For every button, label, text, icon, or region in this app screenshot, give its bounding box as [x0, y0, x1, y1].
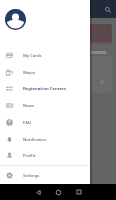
button[interactable]: My Cards [0, 47, 90, 64]
staticText: Notification [23, 137, 47, 143]
staticText: Profile [23, 153, 36, 159]
button[interactable]: Notification [0, 131, 90, 148]
button[interactable]: Search [102, 4, 113, 15]
button[interactable]: Back [33, 184, 44, 200]
staticText: Wayin [23, 70, 36, 76]
button[interactable]: Settings [0, 167, 90, 184]
button[interactable]: Registration Centers [0, 80, 90, 97]
button[interactable]: Recents [73, 184, 84, 200]
button[interactable]: Wayin [0, 64, 90, 81]
button[interactable]: FAQ [0, 114, 90, 131]
button[interactable]: News [0, 97, 90, 114]
staticText: News [23, 103, 34, 109]
staticText: Settings [23, 173, 40, 179]
button[interactable]: Home [53, 184, 64, 200]
staticText: Registration Centers [23, 86, 67, 92]
staticText: My Cards [23, 53, 42, 59]
button[interactable]: Profile [0, 147, 90, 164]
staticText: FAQ [23, 120, 32, 126]
